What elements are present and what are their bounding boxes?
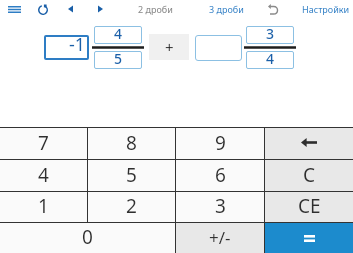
button[interactable]: 6 [176,160,264,191]
staticText: 2 дроби [138,3,173,15]
staticText: 1 [38,193,49,219]
button[interactable]: 4 [0,160,87,191]
button[interactable]: C [265,160,353,191]
staticText: C [303,162,316,188]
staticText: 5 [114,49,123,67]
button[interactable] [195,35,242,61]
staticText: -1 [69,32,86,57]
button[interactable]: Previous [62,0,78,18]
button[interactable]: 2 дроби [133,0,178,18]
button[interactable]: 3 дроби [204,0,249,18]
staticText: 4 [38,162,49,188]
button[interactable]: Настройки [298,0,353,18]
staticText: 0 [82,224,93,250]
button[interactable]: -1 [44,35,89,60]
staticText: 3 [266,24,275,42]
button[interactable]: 5 [88,160,175,191]
button[interactable]: 8 [88,128,175,159]
staticText: 4 [114,24,123,42]
button[interactable]: 4 [246,51,294,69]
button[interactable]: Redo [33,1,53,19]
button[interactable]: 5 [94,51,142,69]
staticText: Настройки [302,3,350,15]
staticText: 9 [215,130,226,156]
staticText: + [165,37,174,57]
button[interactable]: 7 [0,128,87,159]
button[interactable]: 3 [246,26,294,44]
staticText: 4 [266,49,275,67]
staticText: 2 [126,193,137,219]
button[interactable]: Backspace [265,128,353,159]
button[interactable]: 2 [88,192,175,222]
button[interactable]: 3 [176,192,264,222]
button[interactable]: 4 [94,26,142,44]
staticText: 7 [38,130,49,156]
button[interactable]: Equals [265,223,353,253]
staticText: CE [298,193,321,219]
button[interactable]: Undo [263,0,283,18]
staticText: 8 [126,130,137,156]
button[interactable]: 9 [176,128,264,159]
staticText: +/- [209,226,231,249]
staticText: 6 [215,162,226,188]
staticText: 3 дроби [209,3,244,15]
button[interactable]: CE [265,192,353,222]
staticText: 3 [215,193,226,219]
button[interactable]: Next [92,0,108,18]
staticText: 5 [126,162,137,188]
button[interactable]: +/- [176,223,264,253]
button[interactable]: 1 [0,192,87,222]
button[interactable]: Menu [4,0,25,18]
button[interactable]: + [149,34,189,60]
button[interactable]: 0 [0,223,175,253]
